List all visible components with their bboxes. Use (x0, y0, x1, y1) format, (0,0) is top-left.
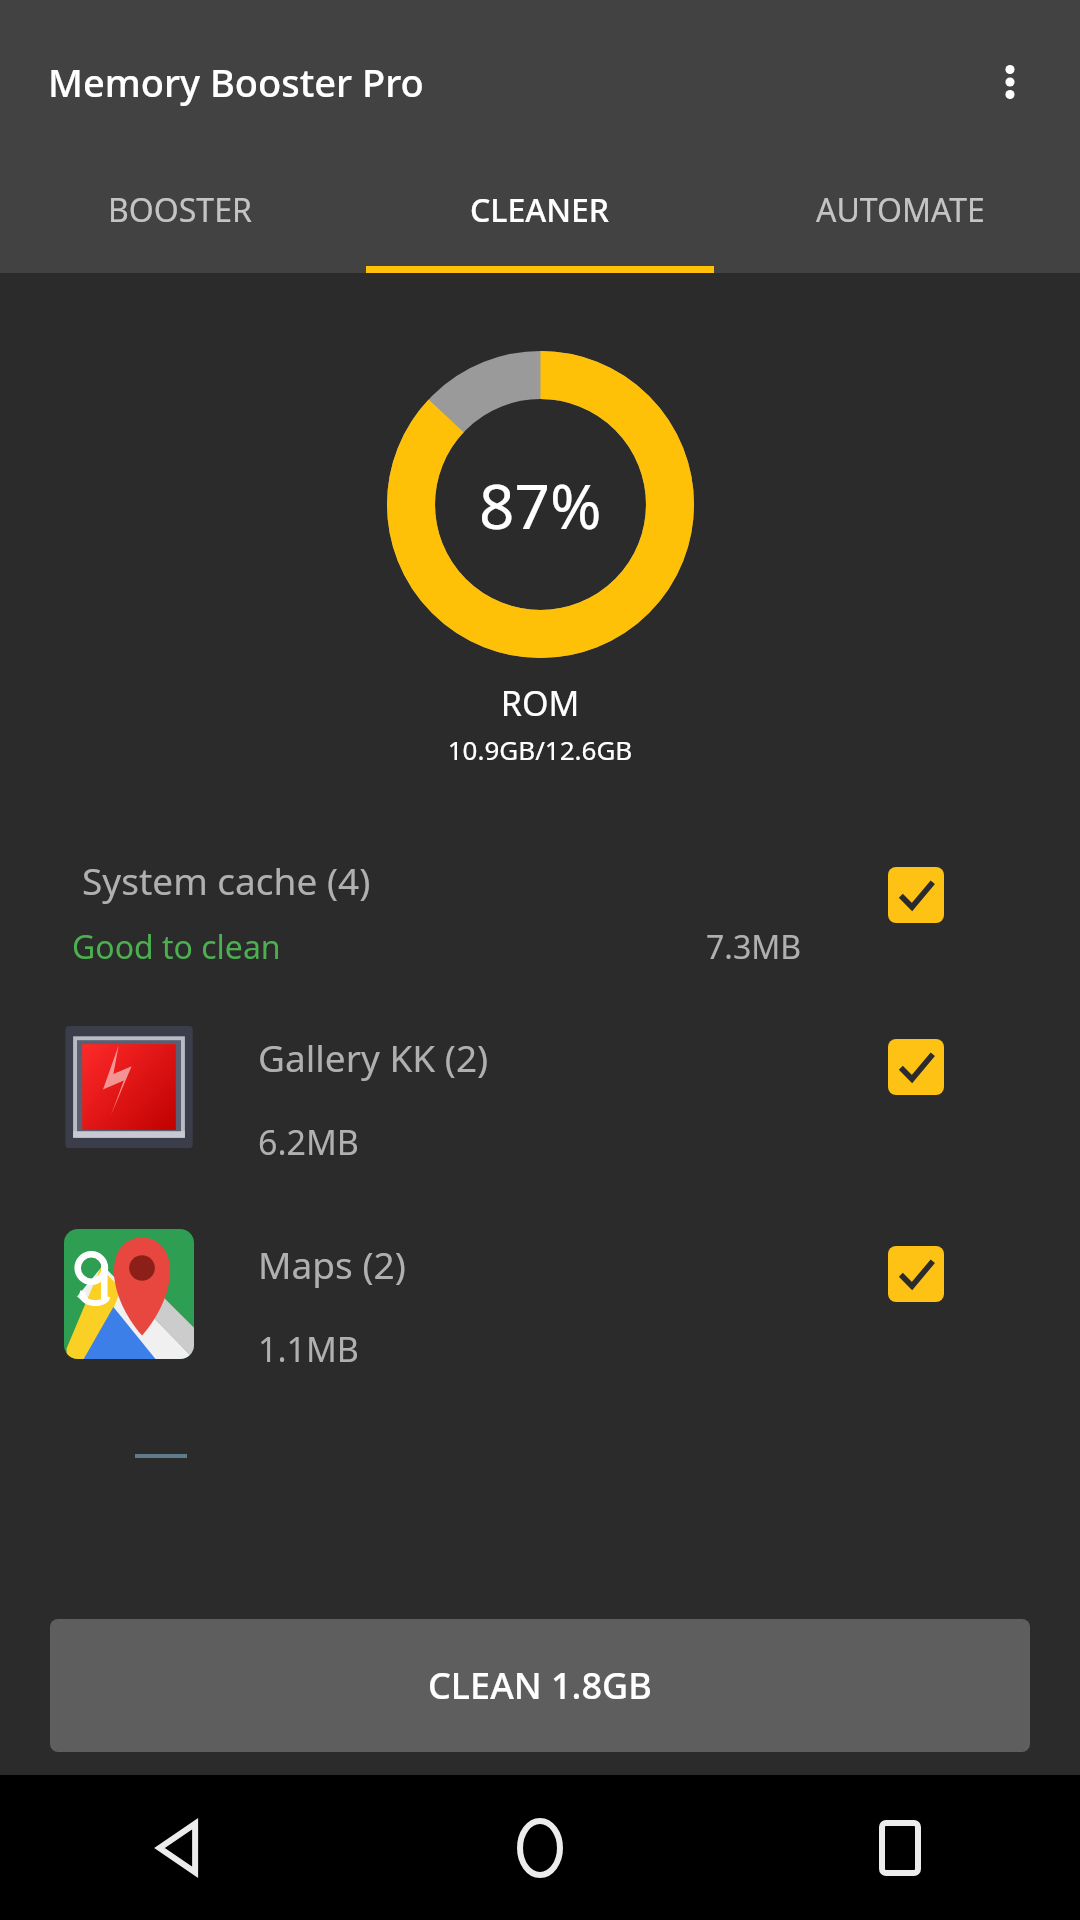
staticText: ROM (0, 680, 1080, 726)
button[interactable]: More options (962, 34, 1058, 130)
staticText: 10.9GB/12.6GB (0, 732, 1080, 767)
button[interactable]: Home (360, 1775, 720, 1920)
staticText: CLEANER (470, 188, 610, 232)
staticText: 87% (479, 463, 602, 547)
staticText: Gallery KK (2) (258, 1032, 489, 1082)
button[interactable]: System cache (4) (0, 839, 1080, 1004)
staticText: Maps (2) (258, 1239, 406, 1289)
staticText: CLEAN 1.8GB (428, 1661, 652, 1710)
button[interactable]: Selected (888, 867, 944, 923)
staticText: System cache (4) (82, 855, 371, 905)
staticText: 7.3MB (706, 925, 802, 969)
staticText: AUTOMATE (816, 188, 985, 232)
button[interactable]: Selected (888, 1246, 944, 1302)
button[interactable]: CLEANER (360, 163, 720, 273)
staticText: BOOSTER (108, 188, 252, 232)
button[interactable]: Recent apps (720, 1775, 1080, 1920)
button[interactable]: AUTOMATE (720, 163, 1080, 273)
button[interactable]: BOOSTER (0, 163, 360, 273)
staticText: Memory Booster Pro (48, 56, 424, 108)
staticText: 6.2MB (258, 1119, 359, 1165)
button[interactable]: Gallery KK (2) (0, 1004, 1080, 1211)
button[interactable]: Back (0, 1775, 360, 1920)
staticText: 1.1MB (258, 1326, 359, 1372)
button[interactable]: CLEAN 1.8GB (50, 1619, 1030, 1752)
button[interactable]: Maps (2) (0, 1211, 1080, 1418)
staticText: Good to clean (72, 925, 281, 969)
button[interactable]: Selected (888, 1039, 944, 1095)
